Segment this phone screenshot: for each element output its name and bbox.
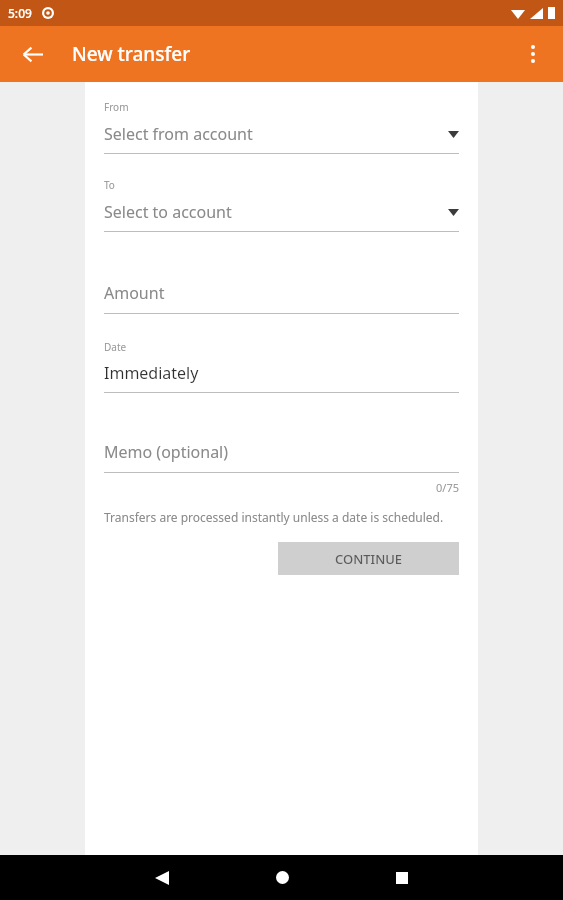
button[interactable]: Amount xyxy=(104,282,459,314)
staticText: Transfers are processed instantly unless… xyxy=(104,509,444,525)
staticText: Date xyxy=(104,340,127,354)
button[interactable]: From xyxy=(104,100,459,154)
staticText: 5:09 xyxy=(8,5,32,21)
button[interactable]: Recent apps xyxy=(372,855,432,900)
staticText: CONTINUE xyxy=(335,550,403,568)
button[interactable]: More options xyxy=(509,30,557,78)
button[interactable]: Back xyxy=(8,30,56,78)
staticText: Amount xyxy=(104,282,165,304)
button[interactable]: Home xyxy=(252,855,312,900)
staticText: 0/75 xyxy=(104,480,459,495)
button[interactable]: Back xyxy=(132,855,192,900)
staticText: New transfer xyxy=(72,41,191,67)
staticText: From xyxy=(104,100,129,114)
button[interactable]: Memo (optional) xyxy=(104,441,459,473)
staticText: Memo (optional) xyxy=(104,441,229,463)
button[interactable]: CONTINUE xyxy=(278,542,459,575)
staticText: Select from account xyxy=(104,123,448,145)
button[interactable]: To xyxy=(104,178,459,232)
staticText: To xyxy=(104,178,115,192)
button[interactable]: Immediately xyxy=(104,362,459,393)
staticText: Immediately xyxy=(104,362,199,384)
staticText: Select to account xyxy=(104,201,448,223)
